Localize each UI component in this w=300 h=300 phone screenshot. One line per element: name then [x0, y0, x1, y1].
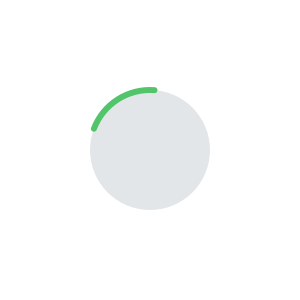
button[interactable]: Loading: [90, 90, 210, 210]
